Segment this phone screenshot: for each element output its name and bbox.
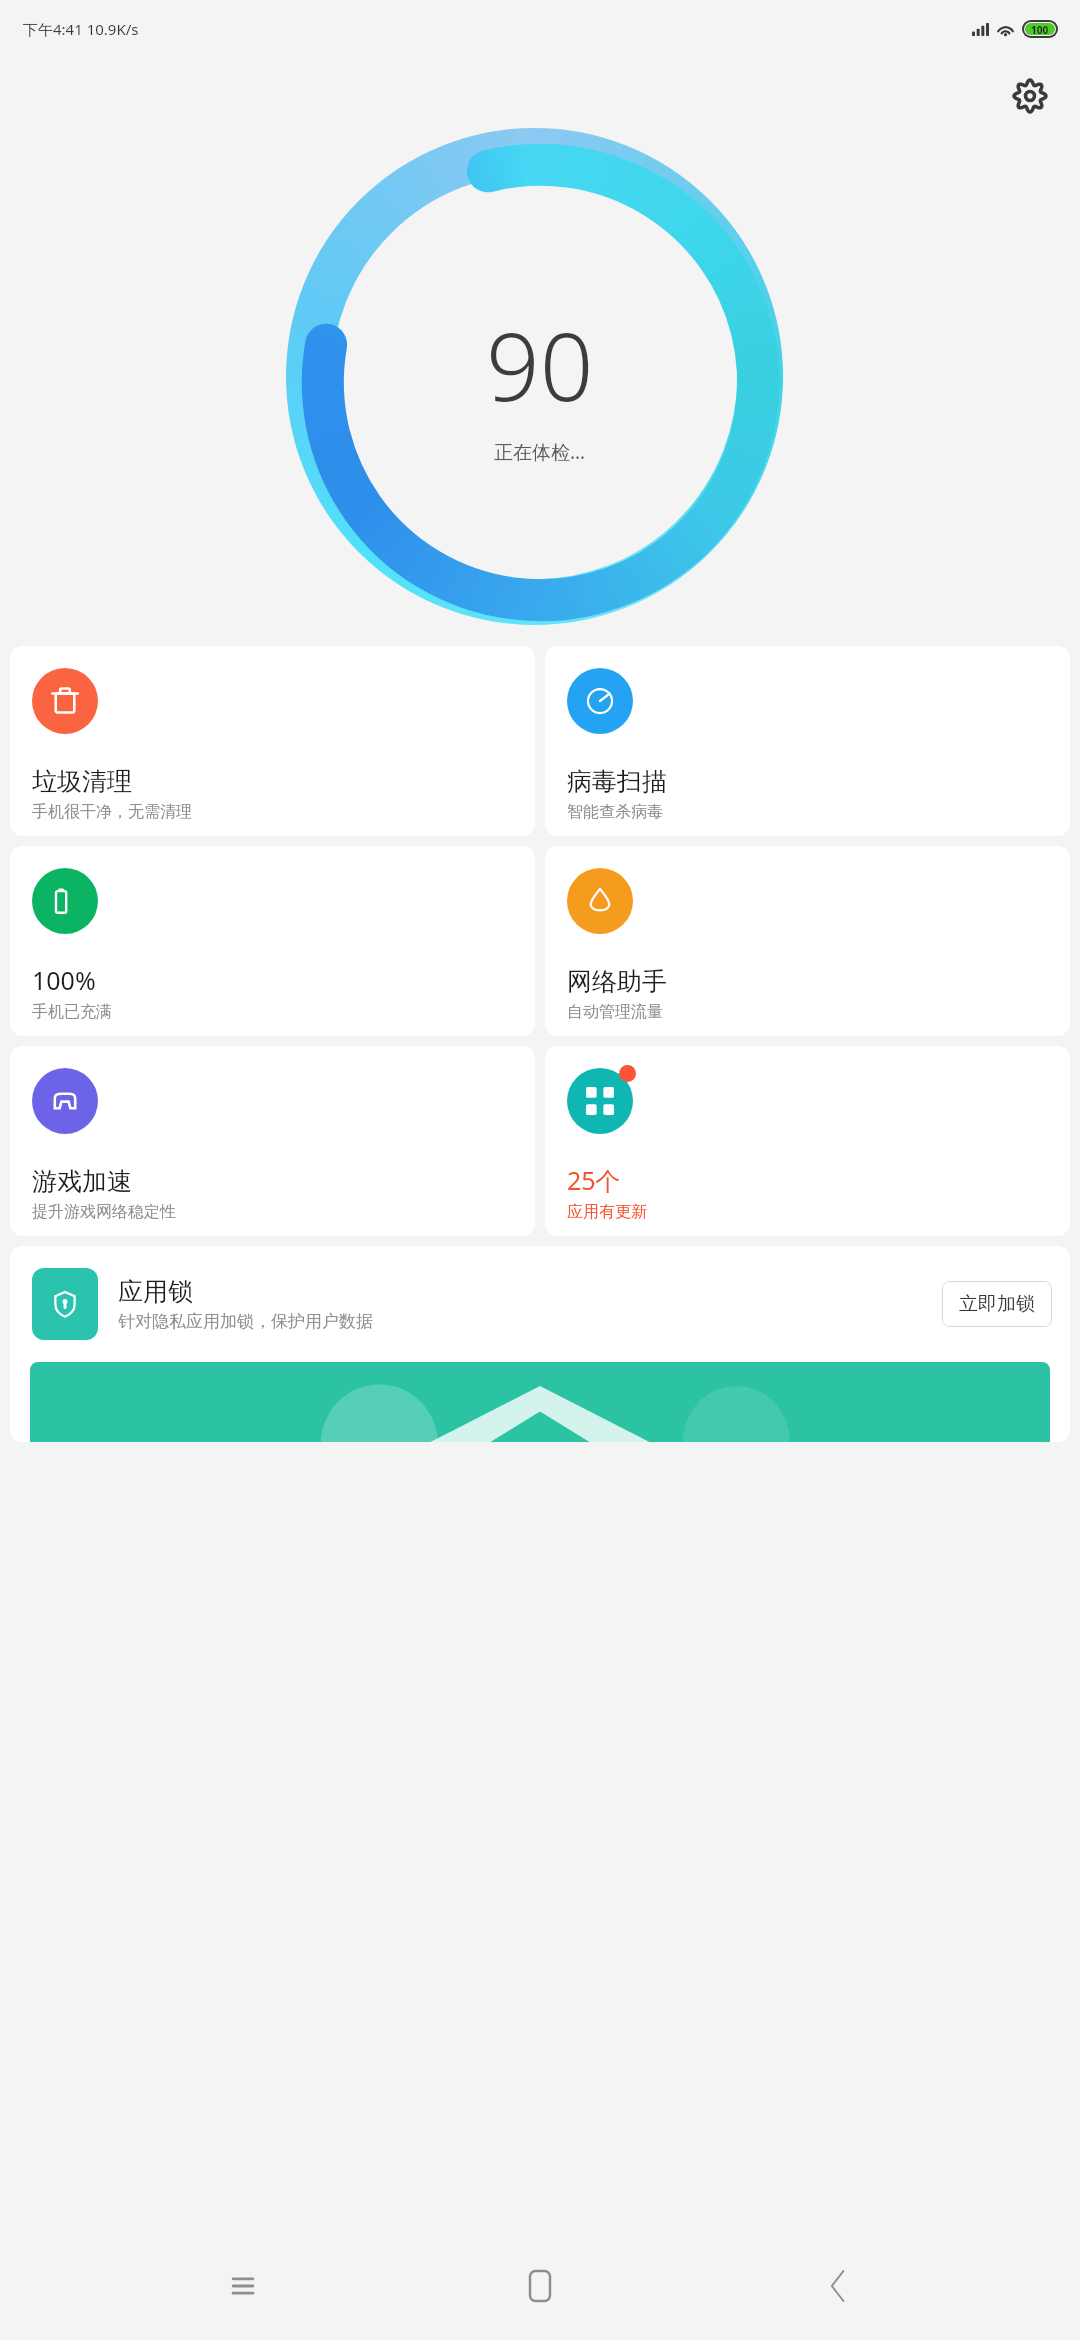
button[interactable]: 100%	[10, 846, 535, 1036]
staticText: 病毒扫描	[567, 766, 667, 797]
staticText: 立即加锁	[959, 1292, 1035, 1316]
staticText: 下午4:41 10.9K/s	[23, 19, 139, 39]
staticText: 智能查杀病毒	[567, 802, 663, 822]
button[interactable]: 25个	[545, 1046, 1070, 1236]
staticText: 手机已充满	[32, 1002, 112, 1022]
staticText: 垃圾清理	[32, 766, 132, 797]
button[interactable]: 网络助手	[545, 846, 1070, 1036]
button[interactable]: Settings	[1002, 68, 1058, 124]
button[interactable]: 应用锁	[10, 1246, 1070, 1442]
button[interactable]: Back	[783, 2232, 893, 2340]
staticText: 网络助手	[567, 966, 667, 997]
staticText: 提升游戏网络稳定性	[32, 1202, 176, 1222]
button[interactable]: Home	[485, 2232, 595, 2340]
staticText: 手机很干净，无需清理	[32, 802, 192, 822]
button[interactable]: Recents	[188, 2232, 298, 2340]
staticText: 90	[486, 301, 594, 429]
button[interactable]: 立即加锁	[942, 1281, 1052, 1327]
staticText: 自动管理流量	[567, 1002, 663, 1022]
staticText: 应用有更新	[567, 1202, 647, 1222]
staticText: 游戏加速	[32, 1166, 132, 1197]
staticText: 100	[1031, 23, 1049, 35]
button[interactable]: 病毒扫描	[545, 646, 1070, 836]
staticText: 针对隐私应用加锁，保护用户数据	[118, 1311, 373, 1332]
button[interactable]: 游戏加速	[10, 1046, 535, 1236]
button[interactable]: 垃圾清理	[10, 646, 535, 836]
staticText: 100%	[32, 963, 96, 997]
staticText: 应用锁	[118, 1276, 193, 1307]
staticText: 正在体检…	[494, 439, 586, 465]
staticText: 25个	[567, 1163, 621, 1197]
